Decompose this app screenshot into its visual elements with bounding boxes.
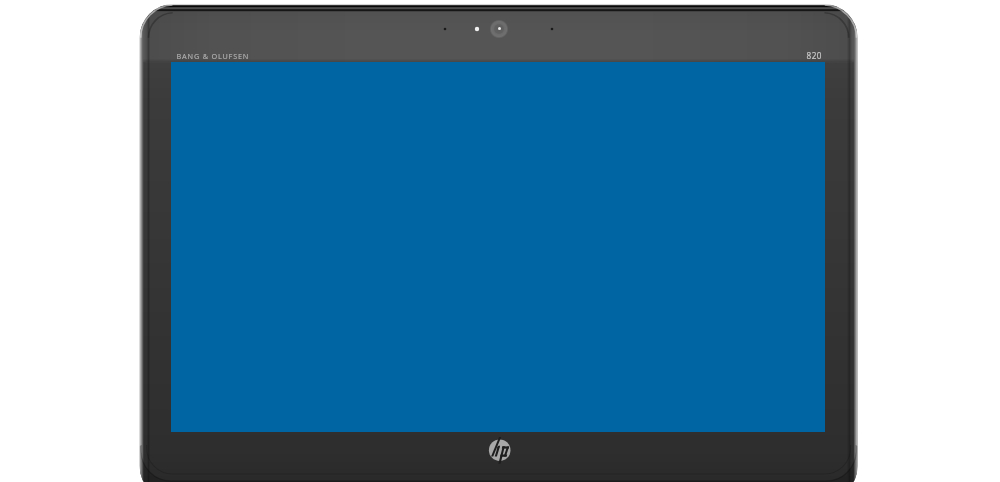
button[interactable]: HP EliteBook 820 tablet [0,0,1000,482]
